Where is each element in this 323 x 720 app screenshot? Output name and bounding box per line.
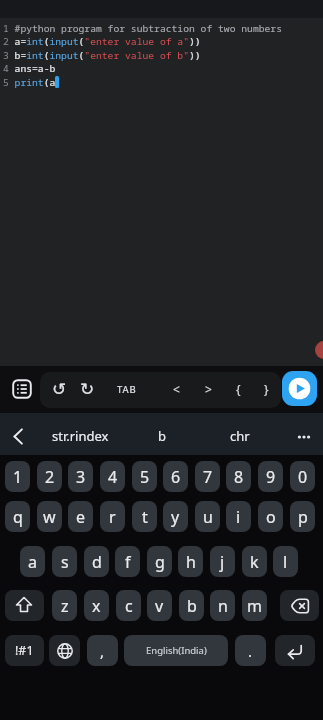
staticText: b bbox=[158, 427, 166, 445]
staticText: ↺ bbox=[52, 379, 67, 399]
button[interactable]: u bbox=[195, 501, 220, 532]
button[interactable] bbox=[5, 590, 44, 621]
button[interactable]: m bbox=[242, 590, 267, 621]
staticText: { bbox=[236, 381, 241, 397]
button[interactable]: p bbox=[290, 501, 315, 532]
staticText: 0 bbox=[298, 466, 308, 488]
staticText: } bbox=[264, 381, 269, 397]
staticText: 2 a=int(input("enter value of a")) bbox=[3, 35, 201, 48]
staticText: 8 bbox=[234, 466, 244, 488]
button[interactable]: f bbox=[115, 546, 140, 577]
staticText: 4 ans=a-b bbox=[3, 62, 56, 75]
button[interactable]: g bbox=[147, 546, 172, 577]
button[interactable]: English(India) bbox=[124, 635, 228, 666]
button[interactable]: 2 bbox=[37, 461, 62, 492]
staticText: m bbox=[247, 595, 262, 617]
button[interactable]: t bbox=[132, 501, 157, 532]
button[interactable] bbox=[292, 426, 316, 448]
staticText: d bbox=[92, 551, 102, 573]
button[interactable]: str.rindex bbox=[33, 415, 127, 457]
button[interactable]: b bbox=[134, 415, 189, 457]
button[interactable] bbox=[275, 635, 315, 666]
button[interactable]: } bbox=[255, 377, 277, 401]
button[interactable]: 1 bbox=[5, 461, 30, 492]
staticText: 1 bbox=[13, 466, 23, 488]
staticText: 1 #python program for subtraction of two… bbox=[3, 22, 282, 35]
button[interactable]: < bbox=[165, 377, 187, 401]
staticText: y bbox=[171, 506, 180, 528]
button[interactable]: ↻ bbox=[76, 376, 98, 402]
button[interactable]: q bbox=[5, 501, 30, 532]
staticText: str.rindex bbox=[52, 427, 109, 445]
staticText: r bbox=[109, 506, 116, 528]
staticText: ↻ bbox=[80, 379, 95, 399]
button[interactable]: h bbox=[178, 546, 203, 577]
button[interactable] bbox=[282, 371, 317, 406]
button[interactable]: l bbox=[273, 546, 298, 577]
staticText: g bbox=[155, 551, 165, 573]
staticText: 5 print(a bbox=[3, 76, 56, 89]
button[interactable]: !#1 bbox=[5, 635, 44, 666]
staticText: u bbox=[203, 506, 213, 528]
staticText: j bbox=[220, 551, 225, 573]
button[interactable]: chr bbox=[210, 415, 270, 457]
button[interactable]: s bbox=[52, 546, 77, 577]
staticText: < bbox=[173, 381, 180, 397]
button[interactable]: z bbox=[52, 590, 77, 621]
button[interactable]: c bbox=[116, 590, 141, 621]
button[interactable]: k bbox=[242, 546, 267, 577]
staticText: v bbox=[155, 595, 164, 617]
button[interactable]: . bbox=[235, 635, 266, 666]
button[interactable]: ↺ bbox=[48, 376, 70, 402]
staticText: 3 b=int(input("enter value of b")) bbox=[3, 49, 201, 62]
button[interactable]: v bbox=[147, 590, 172, 621]
button[interactable]: y bbox=[163, 501, 188, 532]
button[interactable]: 3 bbox=[68, 461, 93, 492]
staticText: 9 bbox=[266, 466, 276, 488]
staticText: p bbox=[298, 506, 308, 528]
button[interactable] bbox=[315, 341, 323, 359]
staticText: 7 bbox=[203, 466, 213, 488]
button[interactable]: TAB bbox=[110, 377, 143, 401]
button[interactable]: r bbox=[100, 501, 125, 532]
staticText: 6 bbox=[171, 466, 181, 488]
staticText: . bbox=[248, 641, 253, 661]
staticText: 5 bbox=[140, 466, 150, 488]
staticText: !#1 bbox=[15, 642, 34, 659]
staticText: t bbox=[142, 506, 148, 528]
button[interactable]: 6 bbox=[163, 461, 188, 492]
staticText: c bbox=[125, 595, 133, 617]
button[interactable]: j bbox=[210, 546, 235, 577]
button[interactable]: n bbox=[210, 590, 235, 621]
button[interactable]: 5 bbox=[132, 461, 157, 492]
staticText: 3 bbox=[76, 466, 86, 488]
staticText: z bbox=[61, 595, 69, 617]
button[interactable]: w bbox=[37, 501, 62, 532]
staticText: k bbox=[250, 551, 259, 573]
button[interactable]: 4 bbox=[100, 461, 125, 492]
staticText: w bbox=[43, 506, 56, 528]
button[interactable]: 0 bbox=[290, 461, 315, 492]
button[interactable] bbox=[49, 635, 80, 666]
button[interactable]: d bbox=[84, 546, 109, 577]
staticText: i bbox=[236, 506, 241, 528]
staticText: English(India) bbox=[146, 644, 207, 657]
staticText: o bbox=[266, 506, 276, 528]
button[interactable]: x bbox=[84, 590, 109, 621]
staticText: q bbox=[13, 506, 23, 528]
button[interactable] bbox=[6, 426, 28, 448]
button[interactable]: 7 bbox=[195, 461, 220, 492]
button[interactable]: a bbox=[20, 546, 45, 577]
button[interactable]: { bbox=[227, 377, 249, 401]
button[interactable]: 9 bbox=[258, 461, 283, 492]
staticText: h bbox=[186, 551, 196, 573]
button[interactable]: > bbox=[197, 377, 219, 401]
button[interactable]: , bbox=[87, 635, 118, 666]
button[interactable] bbox=[280, 590, 319, 621]
button[interactable]: 8 bbox=[226, 461, 251, 492]
button[interactable]: b bbox=[179, 590, 204, 621]
button[interactable]: o bbox=[258, 501, 283, 532]
button[interactable] bbox=[10, 377, 34, 401]
button[interactable]: e bbox=[68, 501, 93, 532]
button[interactable]: i bbox=[226, 501, 251, 532]
